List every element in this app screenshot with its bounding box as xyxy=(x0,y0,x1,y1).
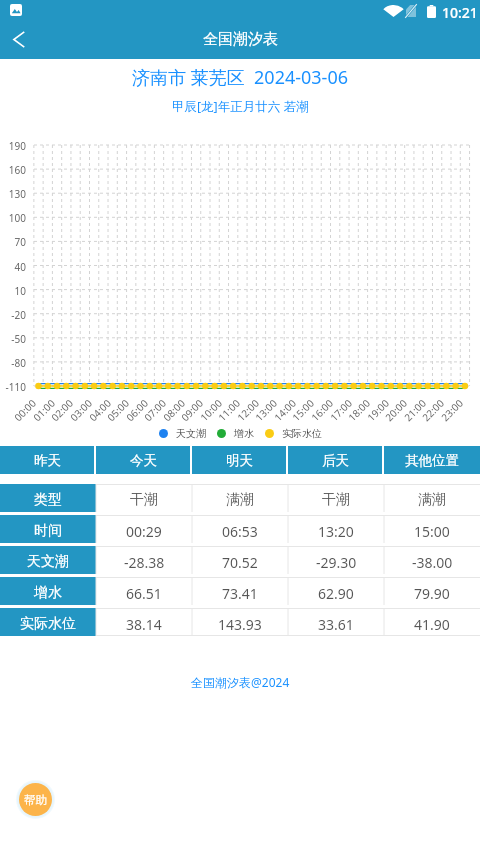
staticText: 12:00 xyxy=(234,396,262,424)
staticText: 增水 xyxy=(234,427,254,440)
staticText: 23:00 xyxy=(438,396,466,424)
staticText: 10:00 xyxy=(197,396,225,424)
staticText: 明天 xyxy=(226,452,253,469)
button[interactable]: Back xyxy=(0,20,40,59)
staticText: 其他位置 xyxy=(405,452,459,469)
staticText: 满潮 xyxy=(418,491,446,509)
staticText: 40 xyxy=(0,260,26,274)
button[interactable]: 时间 xyxy=(0,515,96,543)
staticText: -110 xyxy=(0,380,26,394)
staticText: 66.51 xyxy=(126,584,162,603)
staticText: -28.38 xyxy=(124,553,165,572)
staticText: 全国潮汐表@2024 xyxy=(191,674,290,690)
staticText: 06:53 xyxy=(222,522,258,541)
staticText: 143.93 xyxy=(218,615,262,634)
staticText: 14:00 xyxy=(271,396,299,424)
staticText: -38.00 xyxy=(412,553,453,572)
staticText: 22:00 xyxy=(419,396,447,424)
staticText: 昨天 xyxy=(34,452,61,469)
staticText: 15:00 xyxy=(414,522,450,541)
button[interactable]: 后天 xyxy=(288,446,382,474)
staticText: -50 xyxy=(0,332,26,346)
staticText: 16:00 xyxy=(308,396,336,424)
staticText: 今天 xyxy=(130,452,157,469)
staticText: 干潮 xyxy=(322,491,350,509)
staticText: 13:20 xyxy=(318,522,354,541)
staticText: 20:00 xyxy=(382,396,410,424)
button[interactable]: 实际水位 xyxy=(0,608,96,636)
staticText: -20 xyxy=(0,308,26,322)
staticText: 满潮 xyxy=(226,491,254,509)
staticText: 03:00 xyxy=(67,396,95,424)
staticText: 00:29 xyxy=(126,522,162,541)
staticText: 38.14 xyxy=(126,615,162,634)
staticText: 04:00 xyxy=(86,396,114,424)
button[interactable]: 今天 xyxy=(96,446,190,474)
staticText: 时间 xyxy=(34,522,62,540)
staticText: 10:21 xyxy=(442,3,478,22)
staticText: 帮助 xyxy=(24,793,47,807)
staticText: 后天 xyxy=(322,452,349,469)
staticText: 天文潮 xyxy=(27,553,69,571)
staticText: 实际水位 xyxy=(282,427,322,440)
button[interactable]: 类型 xyxy=(0,484,96,512)
staticText: 07:00 xyxy=(141,396,169,424)
staticText: 天文潮 xyxy=(176,427,206,440)
staticText: 00:00 xyxy=(11,396,39,424)
staticText: 01:00 xyxy=(30,396,58,424)
staticText: 全国潮汐表 xyxy=(203,30,278,49)
staticText: 17:00 xyxy=(327,396,355,424)
staticText: 190 xyxy=(0,139,26,153)
staticText: 10 xyxy=(0,284,26,298)
staticText: 实际水位 xyxy=(20,615,76,633)
staticText: 100 xyxy=(0,211,26,225)
staticText: 增水 xyxy=(34,584,62,602)
button[interactable]: 明天 xyxy=(192,446,286,474)
staticText: 70 xyxy=(0,235,26,249)
staticText: 干潮 xyxy=(130,491,158,509)
staticText: 62.90 xyxy=(318,584,354,603)
staticText: 21:00 xyxy=(401,396,429,424)
staticText: 13:00 xyxy=(252,396,280,424)
staticText: 05:00 xyxy=(104,396,132,424)
staticText: 15:00 xyxy=(289,396,317,424)
button[interactable]: 增水 xyxy=(0,577,96,605)
staticText: 济南市 莱芜区 2024-03-06 xyxy=(132,65,348,90)
staticText: 130 xyxy=(0,187,26,201)
staticText: -29.30 xyxy=(316,553,357,572)
staticText: 甲辰[龙]年正月廿六 若潮 xyxy=(172,98,309,115)
staticText: 33.61 xyxy=(318,615,354,634)
staticText: 18:00 xyxy=(345,396,373,424)
button[interactable]: 其他位置 xyxy=(384,446,480,474)
staticText: 19:00 xyxy=(364,396,392,424)
staticText: 11:00 xyxy=(215,396,243,424)
staticText: 类型 xyxy=(34,491,62,509)
button[interactable]: 帮助 xyxy=(19,783,52,816)
button[interactable]: 昨天 xyxy=(0,446,94,474)
staticText: 09:00 xyxy=(178,396,206,424)
staticText: 02:00 xyxy=(48,396,76,424)
staticText: -80 xyxy=(0,356,26,370)
button[interactable]: 天文潮 xyxy=(0,546,96,574)
staticText: 79.90 xyxy=(414,584,450,603)
staticText: 41.90 xyxy=(414,615,450,634)
staticText: 160 xyxy=(0,163,26,177)
staticText: 73.41 xyxy=(222,584,258,603)
staticText: 08:00 xyxy=(160,396,188,424)
staticText: 06:00 xyxy=(123,396,151,424)
staticText: 70.52 xyxy=(222,553,258,572)
